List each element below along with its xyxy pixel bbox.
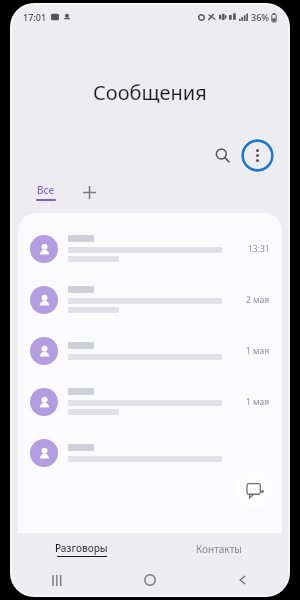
button[interactable]: Add category xyxy=(78,181,100,203)
button[interactable]: Контакты xyxy=(150,533,288,565)
button[interactable]: 1 мая xyxy=(18,376,282,427)
button[interactable] xyxy=(18,427,282,478)
staticText: 2 мая xyxy=(246,294,270,306)
staticText: Все xyxy=(37,183,55,197)
button[interactable]: Все xyxy=(34,183,58,201)
staticText: 17:01 xyxy=(23,11,47,23)
button[interactable]: Back xyxy=(196,565,288,595)
staticText: Разговоры xyxy=(55,541,108,555)
button[interactable]: 13:31 xyxy=(18,223,282,274)
button[interactable]: More options xyxy=(241,139,274,172)
button[interactable]: New conversation xyxy=(236,471,274,509)
button[interactable]: Разговоры xyxy=(12,533,150,565)
staticText: Сообщения xyxy=(93,79,207,106)
button[interactable]: Recents xyxy=(12,565,104,595)
button[interactable]: 2 мая xyxy=(18,274,282,325)
staticText: 1 мая xyxy=(246,345,270,357)
button[interactable]: 1 мая xyxy=(18,325,282,376)
staticText: 1 мая xyxy=(246,396,270,408)
button[interactable]: Home xyxy=(104,565,196,595)
button[interactable]: Search xyxy=(207,140,237,170)
staticText: Контакты xyxy=(196,542,242,556)
staticText: 13:31 xyxy=(248,243,270,255)
staticText: 36% xyxy=(251,11,269,23)
